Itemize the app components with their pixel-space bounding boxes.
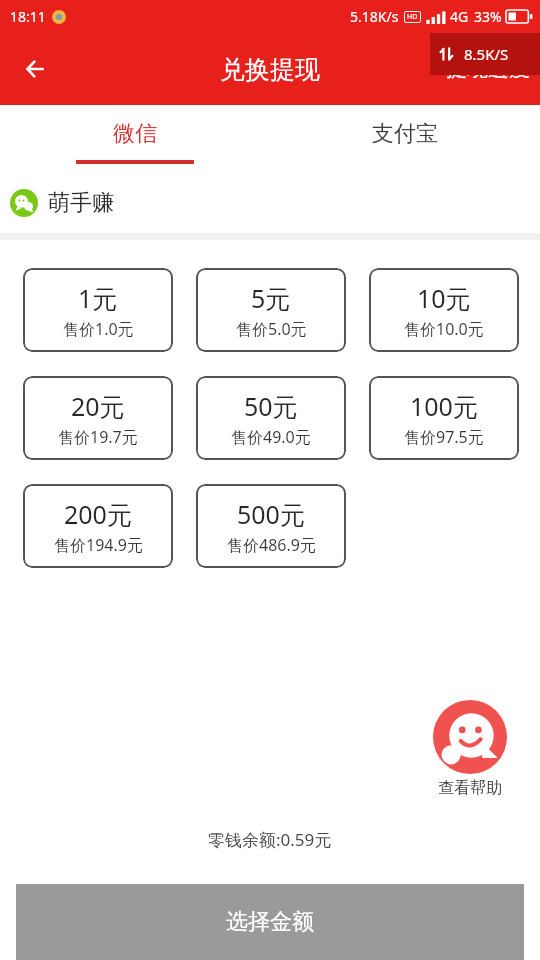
staticText: 售价10.0元 xyxy=(404,318,484,340)
staticText: 提现进度 xyxy=(446,56,530,82)
button[interactable]: 20元 xyxy=(23,376,173,460)
button[interactable]: 返回 xyxy=(14,46,60,92)
staticText: 18:11 xyxy=(10,7,46,26)
staticText: 售价97.5元 xyxy=(404,426,484,448)
staticText: 1元 xyxy=(78,281,118,315)
staticText: 售价1.0元 xyxy=(63,318,134,340)
staticText: 4G xyxy=(450,7,469,26)
staticText: 售价19.7元 xyxy=(58,426,138,448)
staticText: 售价194.9元 xyxy=(54,534,143,556)
staticText: 500元 xyxy=(237,497,305,531)
button[interactable]: 萌手赚 xyxy=(0,172,540,233)
staticText: HD xyxy=(407,12,418,22)
button[interactable]: 查看帮助 xyxy=(424,700,516,798)
button[interactable]: 500元 xyxy=(196,484,346,568)
staticText: 萌手赚 xyxy=(48,189,114,217)
staticText: 售价486.9元 xyxy=(227,534,316,556)
staticText: 选择金额 xyxy=(226,908,314,936)
staticText: 微信 xyxy=(113,120,157,148)
staticText: 5.18K/s xyxy=(350,7,399,26)
staticText: 零钱余额:0.59元 xyxy=(208,828,332,851)
staticText: 查看帮助 xyxy=(438,778,502,798)
staticText: 兑换提现 xyxy=(220,54,320,85)
staticText: 5元 xyxy=(251,281,291,315)
button[interactable]: 支付宝 xyxy=(270,105,540,172)
button[interactable]: 10元 xyxy=(369,268,519,352)
button[interactable]: 5元 xyxy=(196,268,346,352)
button[interactable]: 50元 xyxy=(196,376,346,460)
staticText: 10元 xyxy=(417,281,471,315)
staticText: 100元 xyxy=(410,389,478,423)
button[interactable]: 提现进度 xyxy=(446,56,530,82)
button[interactable]: 选择金额 xyxy=(16,884,524,960)
staticText: 售价5.0元 xyxy=(236,318,307,340)
button[interactable]: 100元 xyxy=(369,376,519,460)
button[interactable]: 1元 xyxy=(23,268,173,352)
staticText: 33% xyxy=(474,7,502,26)
staticText: 20元 xyxy=(71,389,125,423)
staticText: 支付宝 xyxy=(372,120,438,148)
button[interactable]: 微信 xyxy=(0,105,270,172)
staticText: 售价49.0元 xyxy=(231,426,311,448)
staticText: 50元 xyxy=(244,389,298,423)
staticText: 200元 xyxy=(64,497,132,531)
staticText: 8.5K/S xyxy=(464,44,509,64)
button[interactable]: 200元 xyxy=(23,484,173,568)
